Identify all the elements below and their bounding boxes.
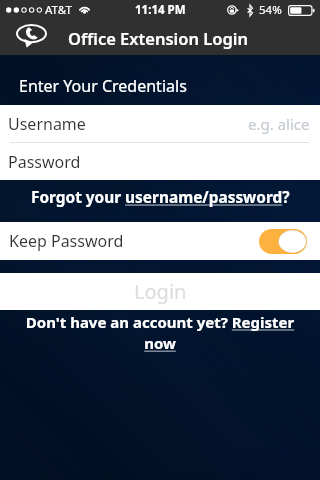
staticText: AT&T (45, 2, 72, 18)
staticText: Enter Your Credentials (19, 75, 187, 97)
button[interactable]: Keep Password (0, 222, 320, 260)
button[interactable]: Forgot your username/password? (23, 181, 298, 214)
button[interactable]: Don't have an account yet? Register now (0, 312, 320, 354)
staticText: Don't have an account yet? Register now (10, 312, 310, 354)
button[interactable]: Password (0, 143, 320, 180)
staticText: 54% (259, 2, 282, 18)
staticText: 11:14 PM (135, 2, 186, 18)
button[interactable]: Login (0, 273, 320, 310)
staticText: Login (134, 278, 187, 305)
staticText: Password (8, 151, 81, 173)
staticText: Office Extension Login (68, 27, 248, 49)
staticText: e.g. alice (248, 114, 310, 134)
staticText: Keep Password (9, 230, 124, 252)
button[interactable]: App logo (16, 24, 47, 48)
button[interactable]: Keep Password toggle (259, 229, 307, 254)
staticText: Username (8, 113, 86, 135)
button[interactable]: Username (0, 105, 320, 142)
